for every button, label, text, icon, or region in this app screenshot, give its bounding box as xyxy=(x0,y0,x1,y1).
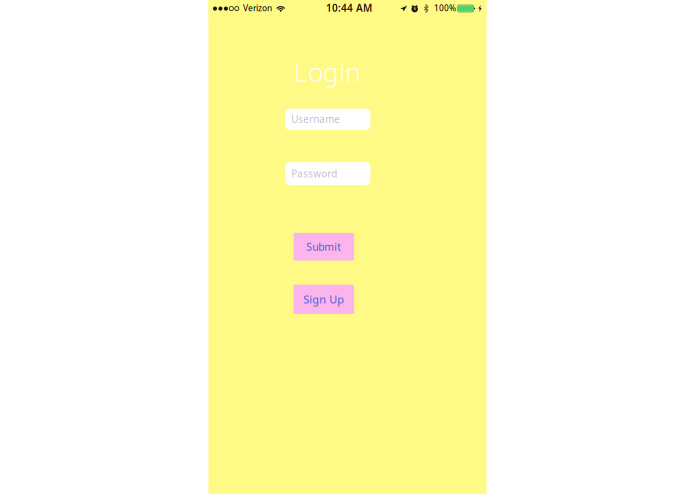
staticText: 100% xyxy=(434,2,456,14)
staticText: Submit xyxy=(306,240,341,254)
staticText: Username xyxy=(291,112,340,126)
button[interactable]: Password xyxy=(285,162,370,185)
staticText: Verizon xyxy=(243,2,272,14)
staticText: Sign Up xyxy=(303,292,344,307)
button[interactable]: Username xyxy=(285,109,370,130)
button[interactable]: Sign Up xyxy=(294,285,354,314)
staticText: Login xyxy=(294,54,361,89)
staticText: Password xyxy=(291,167,337,180)
button[interactable]: Submit xyxy=(294,233,354,260)
staticText: 10:44 AM xyxy=(326,1,372,15)
